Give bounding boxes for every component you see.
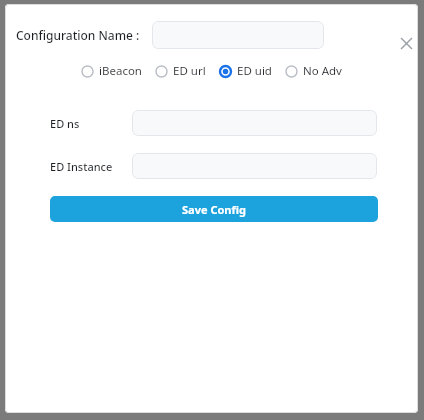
button[interactable] [152,21,324,49]
staticText: Configuration Name : [16,27,140,43]
staticText: ED ns [50,116,80,131]
staticText: ED url [173,63,206,79]
staticText: ED uid [237,63,272,79]
button[interactable]: ED uid [217,61,274,81]
button[interactable]: Save Config [50,196,378,222]
staticText: ED Instance [50,159,113,174]
staticText: No Adv [303,63,342,79]
button[interactable] [132,110,377,136]
button[interactable]: ED url [153,61,208,81]
button[interactable] [132,153,377,179]
staticText: Save Config [182,202,246,217]
staticText: iBeacon [99,63,142,79]
button[interactable]: No Adv [283,61,344,81]
button[interactable]: iBeacon [79,61,144,81]
button[interactable]: Close [393,30,418,56]
